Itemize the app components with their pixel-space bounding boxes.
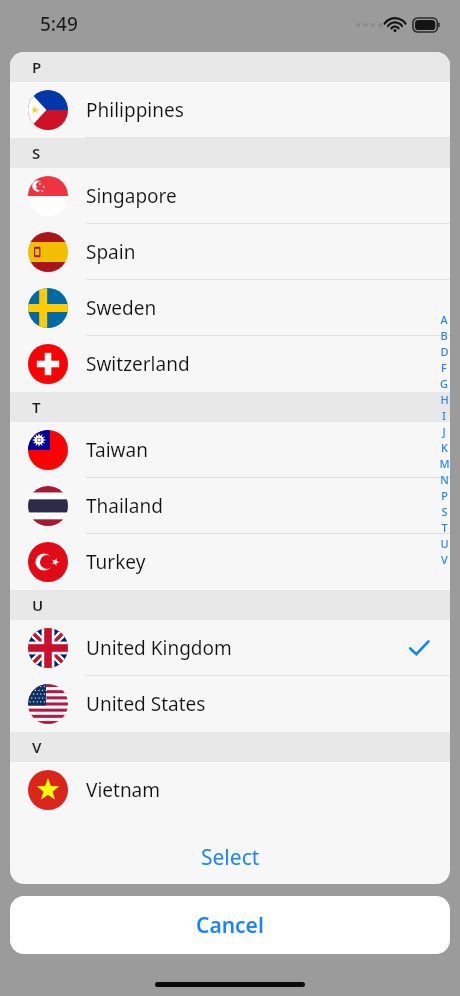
staticText: B: [440, 328, 448, 343]
staticText: Vietnam: [86, 777, 161, 803]
button[interactable]: Select: [10, 830, 450, 884]
staticText: T: [441, 520, 448, 535]
staticText: M: [439, 456, 450, 471]
staticText: U: [32, 595, 44, 615]
staticText: Switzerland: [86, 351, 190, 377]
staticText: S: [32, 143, 41, 163]
staticText: A: [440, 312, 448, 327]
button[interactable]: United States: [10, 676, 450, 732]
staticText: Singapore: [86, 183, 177, 209]
staticText: P: [32, 57, 42, 77]
staticText: U: [440, 536, 449, 551]
staticText: Philippines: [86, 97, 184, 123]
button[interactable]: Turkey: [10, 534, 450, 590]
staticText: V: [32, 737, 42, 757]
staticText: Turkey: [86, 549, 146, 575]
button[interactable]: Philippines: [10, 82, 450, 138]
staticText: United Kingdom: [86, 635, 232, 661]
staticText: K: [441, 440, 448, 455]
staticText: P: [441, 488, 448, 503]
staticText: N: [440, 472, 449, 487]
staticText: D: [440, 344, 449, 359]
other: Section index: [434, 311, 454, 567]
staticText: Spain: [86, 239, 136, 265]
button[interactable]: Taiwan: [10, 422, 450, 478]
staticText: Sweden: [86, 295, 157, 321]
staticText: 5:49: [40, 11, 78, 37]
staticText: S: [441, 504, 448, 519]
button[interactable]: Cancel: [10, 896, 450, 954]
staticText: T: [32, 397, 41, 417]
staticText: Taiwan: [86, 437, 148, 463]
staticText: Select: [201, 843, 260, 872]
staticText: J: [442, 424, 446, 439]
button[interactable]: Thailand: [10, 478, 450, 534]
staticText: F: [441, 360, 447, 375]
button[interactable]: Sweden: [10, 280, 450, 336]
staticText: H: [440, 392, 449, 407]
staticText: G: [440, 376, 448, 391]
button[interactable]: United Kingdom: [10, 620, 450, 676]
staticText: Thailand: [86, 493, 163, 519]
staticText: Cancel: [196, 911, 264, 940]
staticText: I: [442, 408, 446, 423]
button[interactable]: Singapore: [10, 168, 450, 224]
button[interactable]: Spain: [10, 224, 450, 280]
staticText: V: [441, 552, 448, 567]
button[interactable]: Vietnam: [10, 762, 450, 818]
staticText: United States: [86, 691, 206, 717]
button[interactable]: Switzerland: [10, 336, 450, 392]
